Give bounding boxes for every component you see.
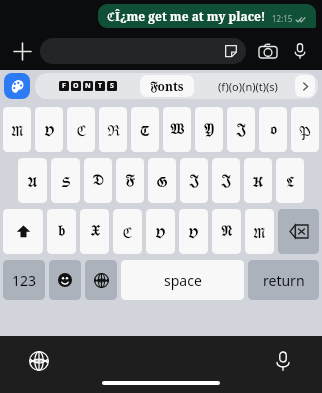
button[interactable]: 𝔗 — [131, 107, 159, 152]
staticText: 12:15 — [272, 13, 293, 24]
button[interactable]: Shift — [3, 209, 43, 254]
button[interactable]: 𝔜 — [195, 107, 223, 152]
staticText: N — [85, 81, 91, 91]
button[interactable]: 𝔙 — [179, 209, 208, 254]
staticText: 𝔚 — [170, 122, 184, 137]
staticText: S — [110, 81, 114, 91]
button[interactable]: Emoji — [49, 260, 81, 300]
staticText: 𝔐 — [11, 118, 24, 142]
button[interactable]: ℭÎ¿me get me at my place! — [98, 4, 316, 28]
button[interactable]: Change keyboard — [24, 346, 54, 376]
button[interactable]: 𝔍 — [227, 107, 255, 152]
staticText: 𝔬 — [270, 122, 277, 137]
staticText: 𝔟 — [58, 224, 65, 239]
button[interactable]: F — [58, 81, 118, 91]
staticText: ℭ — [122, 222, 133, 242]
staticText: F — [62, 81, 66, 91]
button[interactable]: (f)(o)(n)(t)(s) — [216, 79, 280, 94]
staticText: 𝔉onts — [150, 78, 184, 94]
button[interactable] — [40, 38, 246, 64]
button[interactable]: 𝔄 — [18, 158, 47, 203]
button[interactable]: 𝔎 — [244, 158, 272, 203]
staticText: O — [73, 81, 79, 91]
staticText: (f)(o)(n)(t)(s) — [218, 79, 278, 94]
staticText: 𝔛 — [90, 224, 100, 239]
staticText: ℭ — [76, 120, 87, 140]
button[interactable]: 𝔍 — [180, 158, 208, 203]
staticText: 123 — [12, 271, 37, 290]
staticText: 𝔜 — [204, 122, 214, 137]
staticText: 𝔖 — [61, 169, 71, 193]
staticText: return — [263, 271, 305, 290]
staticText: 𝔙 — [44, 118, 55, 142]
staticText: space — [164, 271, 202, 290]
button[interactable]: Voice message — [286, 37, 314, 65]
staticText: 𝔉 — [125, 173, 135, 188]
button[interactable]: More fonts — [295, 75, 315, 97]
button[interactable]: Attach — [8, 37, 36, 65]
button[interactable]: 𝔛 — [80, 209, 109, 254]
staticText: 𝔏 — [286, 169, 295, 193]
staticText: 𝔙 — [155, 220, 166, 244]
button[interactable]: return — [248, 260, 319, 300]
staticText: 𝔓 — [299, 118, 311, 142]
button[interactable]: 𝔊 — [148, 158, 176, 203]
staticText: 𝔍 — [189, 173, 199, 188]
button[interactable]: ℭ — [113, 209, 142, 254]
button[interactable]: Themes — [4, 73, 30, 99]
button[interactable]: 𝔉 — [116, 158, 144, 203]
button[interactable]: 𝔙 — [146, 209, 175, 254]
button[interactable]: 𝔙 — [35, 107, 63, 152]
button[interactable]: 𝔇 — [84, 158, 112, 203]
button[interactable]: Dictation — [268, 346, 298, 376]
button[interactable]: 𝔚 — [163, 107, 191, 152]
button[interactable]: 123 — [3, 260, 45, 300]
button[interactable]: 𝔓 — [291, 107, 319, 152]
staticText: 𝔑 — [221, 224, 232, 239]
staticText: 𝔇 — [92, 173, 104, 188]
button[interactable]: ℭ — [67, 107, 95, 152]
button[interactable]: 𝔏 — [276, 158, 304, 203]
staticText: 𝔍 — [236, 122, 246, 137]
staticText: T — [98, 81, 103, 91]
button[interactable]: space — [121, 260, 244, 300]
staticText: 𝔗 — [140, 118, 150, 142]
staticText: 𝔐 — [253, 220, 266, 244]
staticText: ℜ — [107, 120, 120, 140]
button[interactable]: 𝔖 — [51, 158, 80, 203]
button[interactable]: ℜ — [99, 107, 127, 152]
button[interactable]: 𝔑 — [212, 209, 241, 254]
staticText: 𝔊 — [156, 169, 168, 193]
button[interactable]: 𝔐 — [3, 107, 31, 152]
button[interactable]: 𝔍 — [212, 158, 240, 203]
button[interactable]: Camera — [254, 37, 282, 65]
button[interactable]: Change language — [85, 260, 117, 300]
staticText: 𝔄 — [27, 169, 38, 193]
button[interactable]: 𝔬 — [259, 107, 287, 152]
button[interactable]: 𝔟 — [47, 209, 76, 254]
staticText: 𝔍 — [221, 173, 231, 188]
button[interactable]: 𝔐 — [245, 209, 274, 254]
button[interactable]: 𝔉onts — [140, 75, 194, 97]
staticText: 𝔙 — [188, 220, 199, 244]
button[interactable]: Backspace — [278, 209, 319, 254]
staticText: ℭÎ¿me get me at my place! — [107, 8, 266, 24]
staticText: 𝔎 — [252, 169, 264, 193]
